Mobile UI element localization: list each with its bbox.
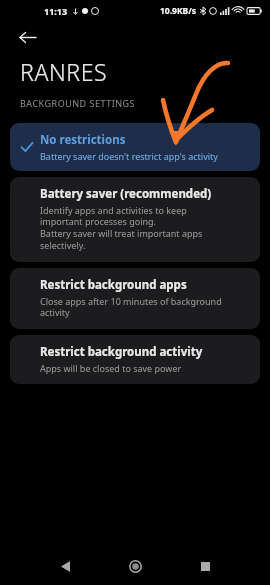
button[interactable]: Restrict background activity (10, 335, 260, 384)
staticText: 11:13 (44, 5, 68, 17)
staticText: RANRES (20, 56, 108, 87)
staticText: Identify apps and activities to keep imp… (40, 204, 203, 252)
button[interactable]: Restrict background apps (10, 268, 260, 329)
staticText: Battery saver (recommended) (40, 186, 212, 202)
button[interactable]: Home (118, 549, 152, 583)
staticText: Battery saver doesn't restrict app's act… (40, 150, 218, 162)
staticText: BACKGROUND SETTINGS (20, 97, 136, 109)
staticText: 10.9KB/s (160, 5, 197, 17)
staticText: Restrict background apps (40, 277, 187, 293)
staticText: Close apps after 10 minutes of backgroun… (40, 295, 222, 319)
staticText: Restrict background activity (40, 344, 203, 360)
staticText: No restrictions (40, 132, 126, 148)
staticText: Apps will be closed to save power (40, 362, 182, 374)
button[interactable]: Battery saver (recommended) (10, 177, 260, 262)
button[interactable]: No restrictions (10, 123, 260, 171)
button[interactable]: Back (48, 549, 82, 583)
button[interactable]: Recent apps (188, 549, 222, 583)
button[interactable]: Back (12, 22, 42, 52)
